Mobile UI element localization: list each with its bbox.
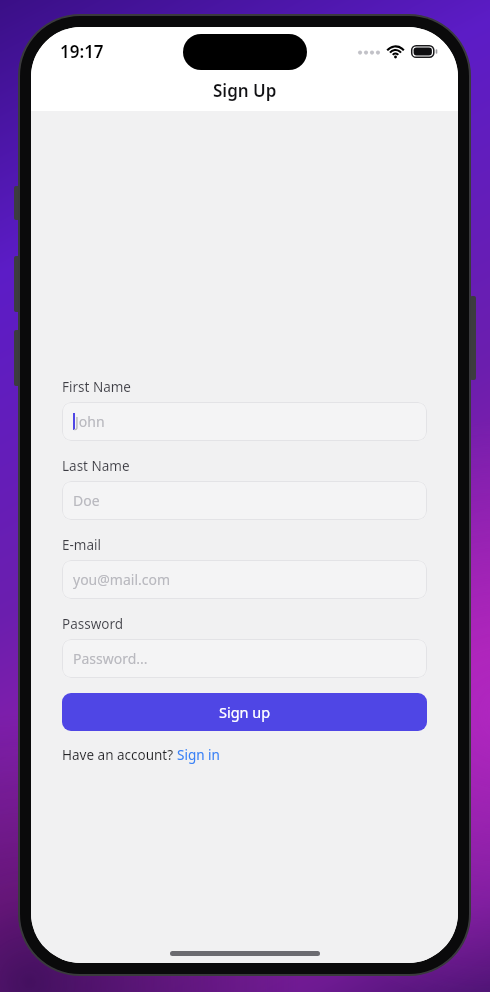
staticText: First Name [62, 378, 131, 396]
staticText: Have an account? [62, 746, 177, 764]
staticText: Password... [73, 649, 148, 668]
staticText: Doe [73, 491, 100, 510]
staticText: Sign in [177, 746, 220, 764]
button[interactable]: you@mail.com [62, 560, 427, 599]
button[interactable]: Password... [62, 639, 427, 678]
staticText: Password [62, 615, 124, 633]
staticText: Last Name [62, 457, 130, 475]
staticText: E-mail [62, 536, 102, 554]
staticText: Sign Up [213, 79, 277, 102]
button[interactable]: John [62, 402, 427, 441]
staticText: 19:17 [60, 40, 104, 63]
staticText: John [75, 412, 105, 431]
button[interactable]: Doe [62, 481, 427, 520]
button[interactable]: Sign up [62, 693, 427, 731]
staticText: Sign up [219, 702, 271, 722]
button[interactable]: Sign in [177, 746, 220, 764]
staticText: you@mail.com [73, 570, 171, 589]
